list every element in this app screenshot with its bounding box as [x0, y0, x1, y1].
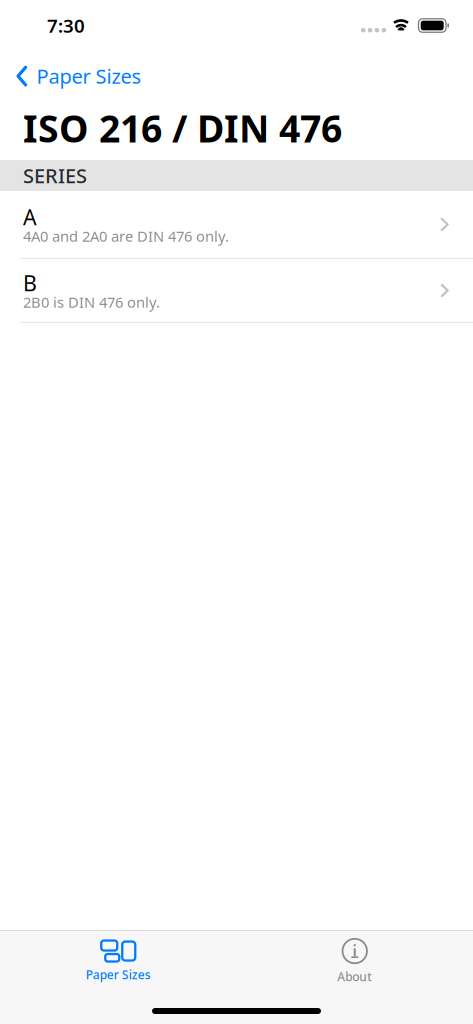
staticText: 7:30 — [47, 13, 85, 38]
button[interactable]: B — [0, 259, 473, 323]
staticText: Paper Sizes — [86, 966, 151, 982]
staticText: A — [23, 203, 37, 231]
button[interactable]: About — [236, 931, 473, 987]
staticText: B — [23, 269, 37, 297]
button[interactable]: Paper Sizes — [0, 63, 153, 89]
staticText: About — [337, 968, 372, 984]
button[interactable]: Paper Sizes — [0, 931, 236, 987]
staticText: 4A0 and 2A0 are DIN 476 only. — [23, 226, 229, 246]
staticText: SERIES — [23, 162, 87, 189]
button[interactable]: A — [0, 191, 473, 259]
staticText: 2B0 is DIN 476 only. — [23, 292, 160, 312]
staticText: ISO 216 / DIN 476 — [23, 103, 342, 153]
staticText: Paper Sizes — [36, 63, 141, 89]
